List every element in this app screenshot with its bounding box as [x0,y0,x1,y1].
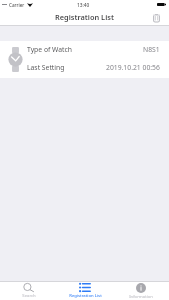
staticText: Search [22,293,36,299]
staticText: Registration List [69,293,102,299]
staticText: 2019.10.21 00:56 [106,63,160,72]
button[interactable]: Delete [149,11,163,25]
button[interactable]: Search [0,281,57,300]
staticText: N8S1 [143,45,160,54]
button[interactable]: Last Setting [0,58,169,76]
staticText: Type of Watch [27,45,73,54]
staticText: Carrier [9,2,25,8]
staticText: Last Setting [27,63,65,72]
button[interactable]: Information [113,281,169,300]
staticText: Registration List [55,12,114,22]
button[interactable]: Registration List [57,281,113,300]
staticText: Information [129,294,153,300]
staticText: 13:40 [77,2,90,9]
button[interactable]: Type of Watch [0,40,169,58]
